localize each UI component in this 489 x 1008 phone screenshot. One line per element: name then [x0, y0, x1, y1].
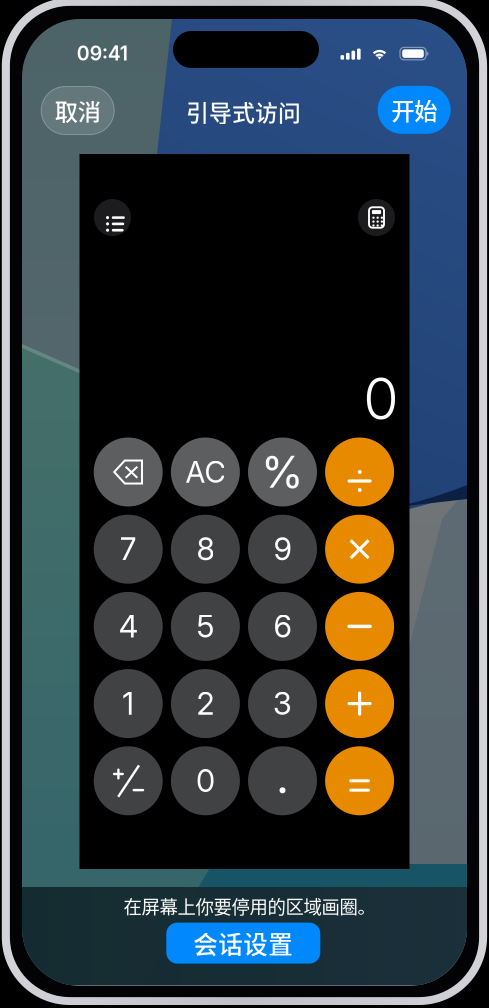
staticText: 09:41 [77, 41, 128, 65]
button[interactable]: Calculator mode [358, 199, 395, 236]
button[interactable]: 5 [171, 592, 240, 661]
button[interactable]: Divide [325, 437, 394, 506]
button[interactable]: 2 [171, 669, 240, 738]
staticText: 引导式访问 [186, 95, 301, 128]
staticText: % [261, 446, 304, 498]
staticText: 会话设置 [193, 925, 293, 961]
button[interactable]: Decimal point [248, 746, 317, 815]
staticText: AC [185, 454, 225, 490]
button[interactable]: % [248, 437, 317, 506]
button[interactable]: 会话设置 [166, 923, 320, 964]
button[interactable]: Subtract [325, 592, 394, 661]
staticText: 8 [196, 531, 214, 568]
button[interactable]: History [94, 199, 131, 236]
button[interactable]: 1 [94, 669, 163, 738]
staticText: 开始 [391, 93, 437, 127]
staticText: 9 [273, 531, 291, 568]
button[interactable]: Delete [94, 437, 163, 506]
staticText: 3 [273, 685, 292, 722]
staticText: 7 [120, 531, 137, 568]
staticText: 0 [196, 762, 215, 799]
staticText: 在屏幕上你要停用的区域画圈。 [123, 892, 375, 919]
button[interactable]: 3 [248, 669, 317, 738]
staticText: 6 [273, 608, 291, 645]
button[interactable]: 取消 [41, 86, 114, 134]
button[interactable]: Add [325, 669, 394, 738]
button[interactable]: Equals [325, 746, 394, 815]
button[interactable]: Multiply [325, 515, 394, 584]
button[interactable]: 7 [94, 515, 163, 584]
button[interactable]: 6 [248, 592, 317, 661]
staticText: 5 [196, 608, 214, 645]
button[interactable]: 9 [248, 515, 317, 584]
staticText: 1 [122, 685, 134, 722]
staticText: 0 [363, 364, 398, 433]
button[interactable]: 8 [171, 515, 240, 584]
button[interactable]: 0 [171, 746, 240, 815]
button[interactable]: AC [171, 437, 240, 506]
button[interactable]: Toggle sign [94, 746, 163, 815]
staticText: 2 [196, 685, 214, 722]
staticText: 取消 [55, 94, 101, 127]
button[interactable]: 4 [94, 592, 163, 661]
staticText: 4 [119, 608, 138, 645]
button[interactable]: 开始 [378, 86, 451, 134]
